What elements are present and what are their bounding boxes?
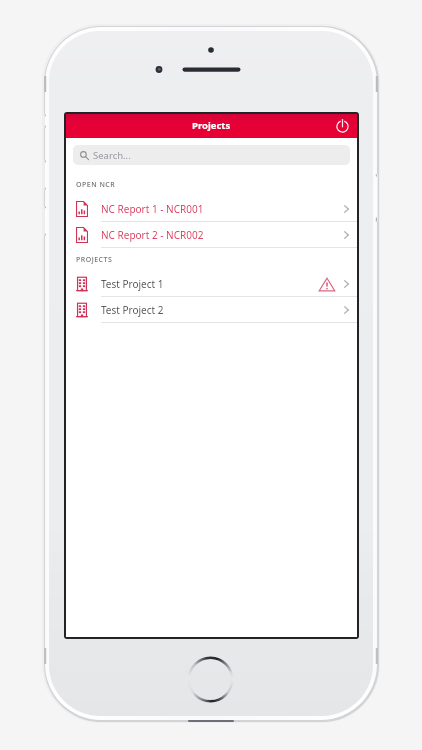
- staticText: NC Report 1 - NCR001: [101, 202, 204, 216]
- staticText: Projects: [192, 119, 231, 132]
- button[interactable]: Test Project 2: [66, 297, 357, 323]
- button[interactable]: Test Project 1: [66, 271, 357, 297]
- button[interactable]: NC Report 2 - NCR002: [66, 222, 357, 248]
- staticText: Search...: [93, 149, 131, 162]
- staticText: OPEN NCR: [76, 180, 116, 190]
- staticText: Test Project 2: [101, 303, 164, 317]
- staticText: NC Report 2 - NCR002: [101, 228, 204, 242]
- button[interactable]: Search...: [73, 145, 350, 165]
- staticText: Test Project 1: [101, 277, 164, 291]
- button[interactable]: NC Report 1 - NCR001: [66, 196, 357, 222]
- button[interactable]: Log out: [333, 117, 351, 135]
- staticText: PROJECTS: [76, 255, 113, 265]
